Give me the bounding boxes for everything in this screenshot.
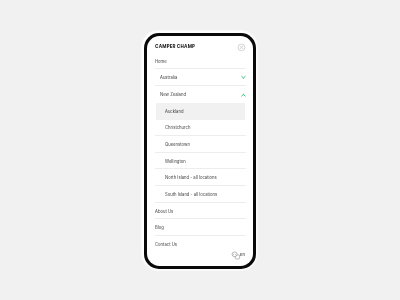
button[interactable]: Language English [231,250,247,261]
staticText: Blog [155,225,164,230]
staticText: New Zealand [160,92,186,97]
staticText: Auckland [165,109,184,114]
button[interactable]: Auckland [147,103,253,120]
button[interactable]: Australia [147,69,253,86]
button[interactable]: About Us [147,203,253,220]
staticText: About Us [155,209,174,214]
staticText: Wellington [165,159,186,164]
staticText: Christchurch [165,125,191,130]
button[interactable]: New Zealand [147,86,253,103]
staticText: Queenstown [165,142,190,147]
staticText: Christchurch [165,125,191,130]
staticText: South Island - all locations [165,192,218,197]
staticText: North Island - all locations [165,175,217,180]
staticText: CAMPER CHAMP [155,43,196,49]
staticText: Home [155,59,167,64]
staticText: En [240,252,245,257]
button[interactable]: Queenstown [147,136,253,153]
staticText: About Us [155,209,174,214]
staticText: New Zealand [160,92,186,97]
staticText: Contact Us [155,242,178,247]
button[interactable]: Home [147,53,253,70]
staticText: South Island - all locations [165,192,218,197]
staticText: En [240,252,245,257]
staticText: Australia [160,75,178,80]
button[interactable]: Close menu [237,43,246,52]
staticText: CAMPER CHAMP [155,43,196,49]
button[interactable]: Wellington [147,153,253,170]
button[interactable]: Blog [147,219,253,236]
staticText: Wellington [165,159,186,164]
button[interactable]: South Island - all locations [147,186,253,203]
button[interactable]: North Island - all locations [147,169,253,186]
staticText: Queenstown [165,142,190,147]
staticText: Auckland [165,109,184,114]
button[interactable]: Christchurch [147,119,253,136]
staticText: Blog [155,225,164,230]
staticText: Australia [160,75,178,80]
button[interactable]: Contact Us [147,236,253,253]
staticText: Contact Us [155,242,178,247]
staticText: Home [155,59,167,64]
staticText: North Island - all locations [165,175,217,180]
